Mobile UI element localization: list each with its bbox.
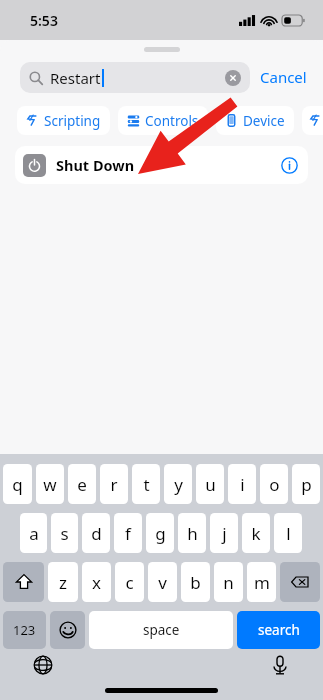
staticText: Shut Down xyxy=(56,155,135,175)
button[interactable]: b xyxy=(181,562,210,602)
staticText: p xyxy=(301,473,312,496)
button[interactable]: Dictation xyxy=(265,650,295,680)
staticText: Scripting xyxy=(44,112,101,130)
button[interactable]: Restart xyxy=(20,62,250,93)
staticText: Controls xyxy=(145,112,199,130)
staticText: y xyxy=(174,473,183,496)
staticText: n xyxy=(223,571,234,594)
staticText: i xyxy=(240,473,245,496)
button[interactable]: e xyxy=(68,464,96,504)
staticText: d xyxy=(91,522,102,545)
staticText: Restart xyxy=(50,68,101,88)
button[interactable]: Clear text xyxy=(225,70,241,86)
staticText: search xyxy=(258,621,300,639)
button[interactable]: r xyxy=(100,464,128,504)
button[interactable]: Scripting xyxy=(17,106,110,135)
button[interactable]: i xyxy=(228,464,256,504)
staticText: Cancel xyxy=(260,67,307,87)
button[interactable]: Controls xyxy=(118,106,208,135)
staticText: u xyxy=(205,473,216,496)
button[interactable]: l xyxy=(274,513,302,553)
button[interactable]: v xyxy=(148,562,177,602)
staticText: k xyxy=(251,522,261,545)
staticText: j xyxy=(222,522,227,545)
staticText: m xyxy=(254,571,270,594)
staticText: f xyxy=(125,522,131,545)
staticText: e xyxy=(77,473,87,496)
staticText: x xyxy=(92,571,101,594)
button[interactable]: search xyxy=(237,611,320,649)
staticText: t xyxy=(143,473,150,496)
staticText: q xyxy=(12,473,23,496)
staticText: c xyxy=(125,571,134,594)
staticText: o xyxy=(269,473,280,496)
button[interactable]: y xyxy=(164,464,192,504)
button[interactable]: Delete xyxy=(280,562,320,602)
button[interactable]: 123 xyxy=(3,611,46,649)
button[interactable]: t xyxy=(132,464,160,504)
staticText: b xyxy=(190,571,201,594)
button[interactable]: h xyxy=(178,513,206,553)
staticText: l xyxy=(286,522,291,545)
staticText: z xyxy=(59,571,67,594)
button[interactable]: Emoji xyxy=(50,611,85,649)
button[interactable]: c xyxy=(115,562,144,602)
button[interactable]: z xyxy=(48,562,78,602)
button[interactable]: space xyxy=(89,611,233,649)
button[interactable]: Change keyboard xyxy=(28,650,58,680)
staticText: 5:53 xyxy=(30,11,58,30)
button[interactable]: n xyxy=(214,562,243,602)
button[interactable]: Info xyxy=(278,154,300,176)
button[interactable]: s xyxy=(51,513,78,553)
staticText: w xyxy=(43,473,57,496)
button[interactable] xyxy=(302,106,323,135)
staticText: h xyxy=(187,522,198,545)
button[interactable]: q xyxy=(3,464,32,504)
button[interactable]: d xyxy=(82,513,110,553)
button[interactable]: Cancel xyxy=(250,61,309,93)
button[interactable]: w xyxy=(36,464,64,504)
button[interactable]: f xyxy=(114,513,142,553)
button[interactable]: j xyxy=(210,513,238,553)
button[interactable]: m xyxy=(247,562,276,602)
button[interactable]: u xyxy=(196,464,224,504)
staticText: Device xyxy=(243,112,285,130)
staticText: v xyxy=(158,571,167,594)
button[interactable]: Device xyxy=(216,106,294,135)
staticText: r xyxy=(110,473,118,496)
button[interactable]: Shut Down xyxy=(15,146,308,184)
staticText: a xyxy=(29,522,39,545)
button[interactable]: k xyxy=(242,513,270,553)
staticText: 123 xyxy=(13,621,36,639)
button[interactable]: a xyxy=(20,513,47,553)
staticText: s xyxy=(60,522,69,545)
staticText: g xyxy=(155,522,166,545)
button[interactable]: Shift xyxy=(3,562,44,602)
staticText: space xyxy=(143,621,180,639)
button[interactable]: x xyxy=(82,562,111,602)
button[interactable]: o xyxy=(260,464,288,504)
button[interactable]: g xyxy=(146,513,174,553)
button[interactable]: p xyxy=(292,464,320,504)
